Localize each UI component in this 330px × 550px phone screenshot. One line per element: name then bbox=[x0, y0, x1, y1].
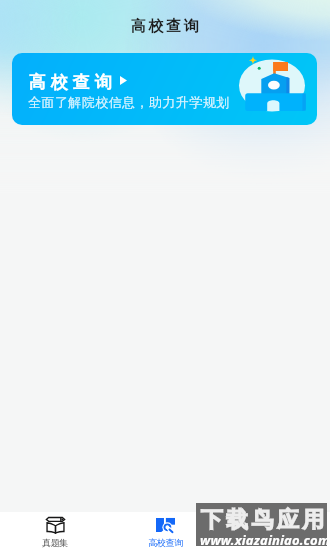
button[interactable]: 高校查询 bbox=[110, 512, 220, 550]
staticText: 高校查询 bbox=[148, 537, 183, 548]
staticText: 高校查询 bbox=[26, 72, 114, 93]
button[interactable]: 真题集 bbox=[0, 512, 110, 550]
staticText: www.xiazainiao.com bbox=[200, 531, 330, 549]
staticText: 全面了解院校信息，助力升学规划 bbox=[28, 94, 230, 110]
staticText: 下载鸟应用 bbox=[199, 506, 326, 534]
button[interactable]: 高校查询 bbox=[12, 53, 317, 125]
staticText: 真题集 bbox=[42, 537, 68, 548]
staticText: 高校查询 bbox=[131, 17, 202, 36]
